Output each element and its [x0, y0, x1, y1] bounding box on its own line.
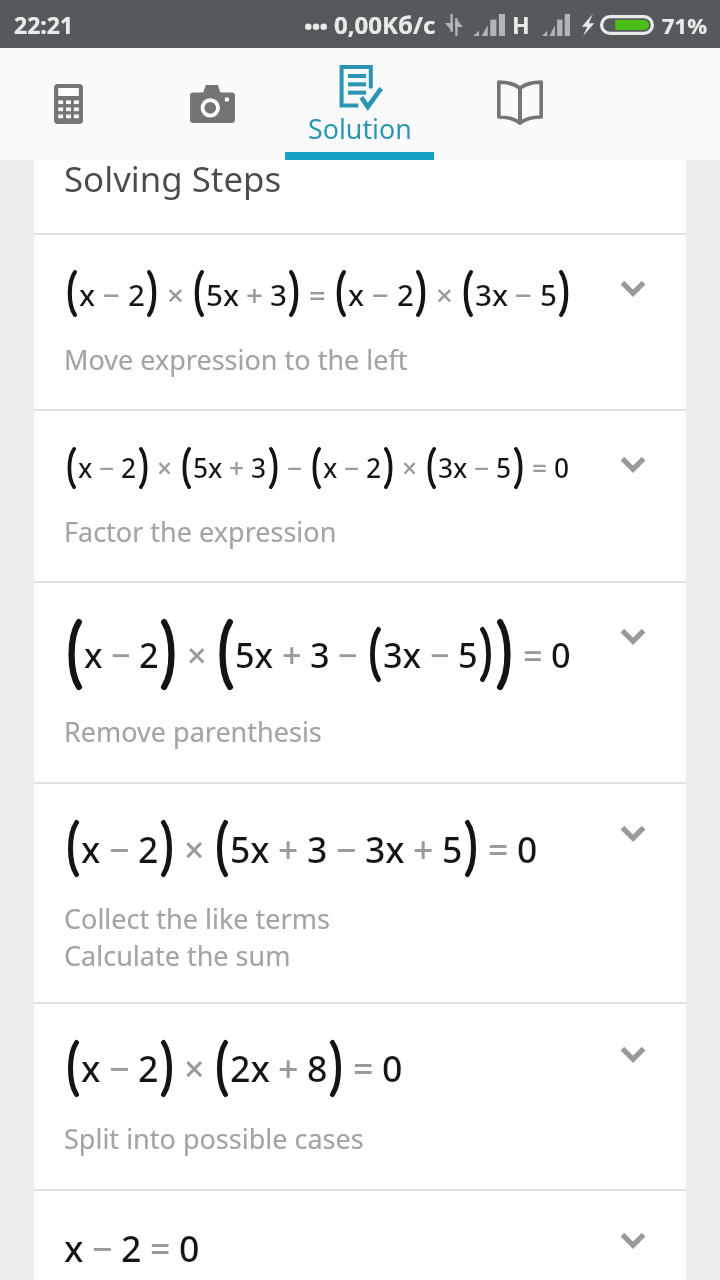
button[interactable]: Expand step — [613, 268, 653, 308]
staticText: − — [109, 825, 130, 873]
staticText: + — [282, 631, 302, 678]
staticText: Factor the expression — [64, 513, 337, 550]
staticText: 5x — [230, 825, 270, 873]
staticText: − — [99, 450, 115, 486]
staticText: × — [157, 450, 173, 486]
staticText: 5 — [540, 274, 557, 314]
staticText: 2 — [366, 450, 382, 486]
button[interactable]: Calculator — [0, 48, 140, 160]
button[interactable]: x — [34, 235, 686, 409]
staticText: × — [187, 631, 207, 678]
staticText: 2 — [121, 450, 137, 486]
staticText: Solving Steps — [64, 155, 282, 202]
staticText: − — [372, 274, 390, 314]
staticText: Calculate the sum — [64, 937, 291, 974]
staticText: x — [81, 1044, 101, 1093]
button[interactable]: Solution — [285, 48, 434, 160]
staticText: 3x — [438, 450, 468, 486]
staticText: Split into possible cases — [64, 1120, 364, 1157]
staticText: 3x — [475, 274, 508, 314]
staticText: − — [103, 274, 121, 314]
staticText: 2x — [230, 1044, 270, 1093]
staticText: + — [278, 1044, 299, 1093]
staticText: 2 — [121, 1224, 142, 1273]
button[interactable]: Camera — [140, 48, 284, 160]
staticText: − — [287, 450, 303, 486]
staticText: × — [184, 825, 205, 873]
button[interactable]: x — [34, 411, 686, 581]
staticText: − — [111, 631, 131, 678]
staticText: 3 — [307, 825, 328, 873]
staticText: x — [348, 274, 365, 314]
staticText: × — [402, 450, 418, 486]
staticText: H — [512, 9, 530, 40]
staticText: − — [109, 1044, 130, 1093]
staticText: 5x — [206, 274, 239, 314]
staticText: × — [184, 1044, 205, 1093]
staticText: = — [532, 450, 548, 486]
button[interactable]: Expand step — [613, 813, 653, 853]
staticText: Remove parenthesis — [64, 713, 322, 750]
button[interactable]: Expand step — [613, 1220, 653, 1260]
button[interactable]: Expand step — [613, 444, 653, 484]
staticText: = — [488, 825, 509, 873]
staticText: Solution — [308, 110, 412, 147]
staticText: x — [78, 450, 93, 486]
staticText: 3 — [310, 631, 330, 678]
staticText: 5x — [193, 450, 223, 486]
staticText: 5 — [496, 450, 512, 486]
button[interactable]: x — [34, 583, 686, 782]
staticText: x — [64, 1224, 84, 1273]
staticText: 2 — [128, 274, 145, 314]
staticText: 0 — [551, 631, 571, 678]
staticText: 2 — [138, 825, 159, 873]
staticText: 5 — [458, 631, 478, 678]
button[interactable]: Library — [448, 48, 592, 160]
staticText: 5x — [235, 631, 274, 678]
button[interactable]: Expand step — [613, 1034, 653, 1074]
staticText: 3x — [365, 825, 405, 873]
staticText: 2 — [139, 631, 159, 678]
staticText: 71% — [662, 10, 708, 40]
staticText: 0 — [382, 1044, 403, 1093]
staticText: x — [79, 274, 96, 314]
staticText: = — [523, 631, 543, 678]
staticText: + — [246, 274, 263, 314]
staticText: × — [436, 274, 453, 314]
staticText: × — [167, 274, 184, 314]
staticText: x — [81, 825, 101, 873]
staticText: 3 — [270, 274, 287, 314]
staticText: 2 — [397, 274, 414, 314]
staticText: + — [413, 825, 434, 873]
staticText: x — [323, 450, 338, 486]
staticText: − — [474, 450, 490, 486]
button[interactable]: Expand step — [613, 616, 653, 656]
staticText: 5 — [442, 825, 463, 873]
button[interactable]: x — [34, 784, 686, 1002]
staticText: − — [92, 1224, 113, 1273]
staticText: − — [430, 631, 450, 678]
staticText: 8 — [307, 1044, 328, 1093]
staticText: + — [278, 825, 299, 873]
staticText: 22:21 — [14, 9, 74, 40]
staticText: 0,00Kб/c — [334, 8, 436, 41]
button[interactable]: x — [34, 1004, 686, 1189]
staticText: − — [344, 450, 360, 486]
staticText: 2 — [138, 1044, 159, 1093]
staticText: 3 — [251, 450, 267, 486]
staticText: = — [353, 1044, 374, 1093]
staticText: 3x — [383, 631, 422, 678]
staticText: = — [150, 1224, 171, 1273]
staticText: − — [515, 274, 533, 314]
staticText: 0 — [517, 825, 538, 873]
staticText: Collect the like terms — [64, 900, 330, 937]
button[interactable]: x — [34, 1191, 686, 1280]
staticText: − — [336, 825, 357, 873]
staticText: 0 — [179, 1224, 200, 1273]
staticText: − — [338, 631, 358, 678]
staticText: = — [309, 274, 326, 314]
staticText: 0 — [554, 450, 570, 486]
staticText: Move expression to the left — [64, 341, 408, 378]
staticText: + — [229, 450, 245, 486]
staticText: x — [84, 631, 103, 678]
